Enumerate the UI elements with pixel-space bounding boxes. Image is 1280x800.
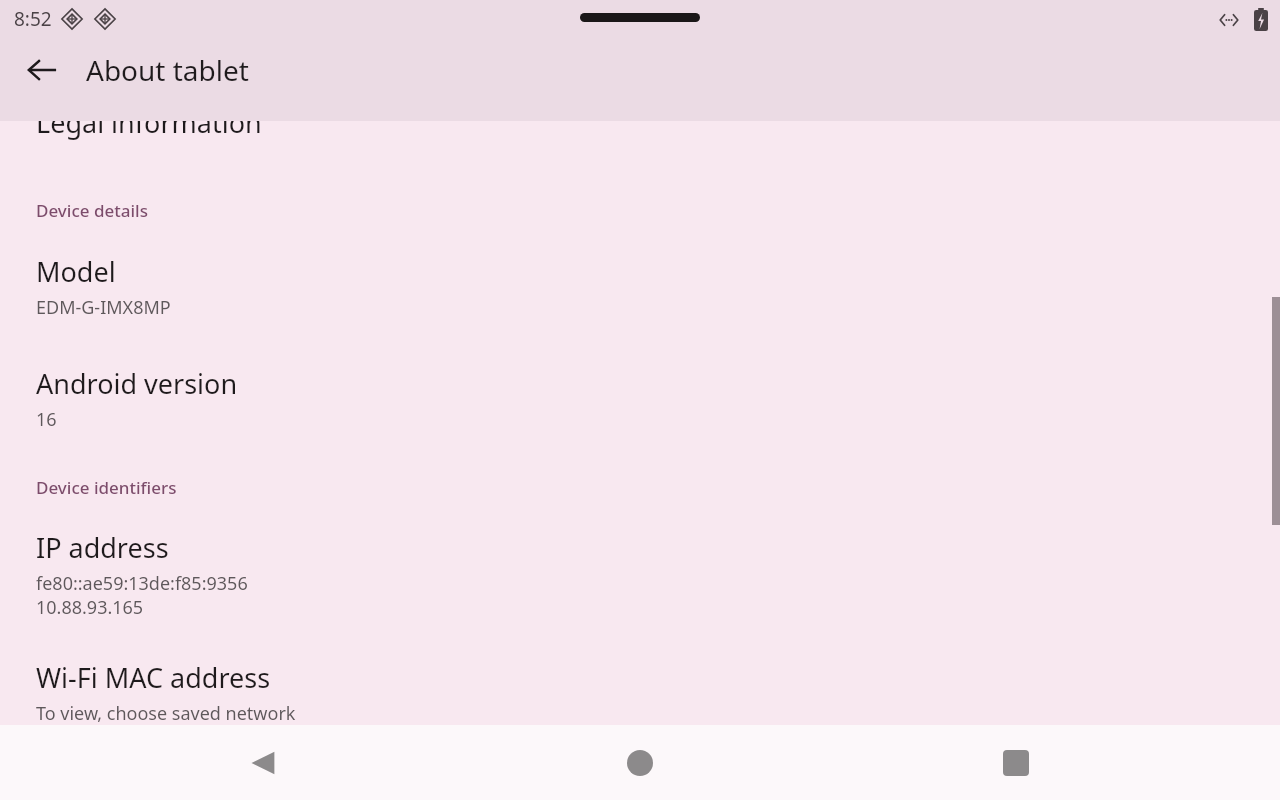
staticText: To view, choose saved network xyxy=(36,701,296,726)
staticText: IP address xyxy=(36,529,169,566)
staticText: Device details xyxy=(36,199,148,222)
button[interactable]: IP address xyxy=(0,529,1280,619)
staticText: Model xyxy=(36,253,116,290)
staticText: 8:52 xyxy=(14,6,52,32)
staticText: About tablet xyxy=(86,51,249,89)
staticText: EDM-G-IMX8MP xyxy=(36,295,171,320)
button[interactable]: Home xyxy=(604,725,676,800)
button[interactable]: Back xyxy=(228,725,300,800)
button[interactable]: Model xyxy=(0,253,1280,320)
button[interactable]: Recent apps xyxy=(980,725,1052,800)
button[interactable]: Wi-Fi MAC address xyxy=(0,659,1280,726)
button[interactable]: Back xyxy=(20,48,64,92)
staticText: Android version xyxy=(36,365,238,402)
staticText: 16 xyxy=(36,407,57,432)
staticText: Device identifiers xyxy=(36,476,177,499)
staticText: Wi-Fi MAC address xyxy=(36,659,271,696)
staticText: Legal information xyxy=(36,104,262,141)
staticText: fe80::ae59:13de:f85:9356 10.88.93.165 xyxy=(36,571,248,619)
button[interactable]: Android version xyxy=(0,365,1280,432)
